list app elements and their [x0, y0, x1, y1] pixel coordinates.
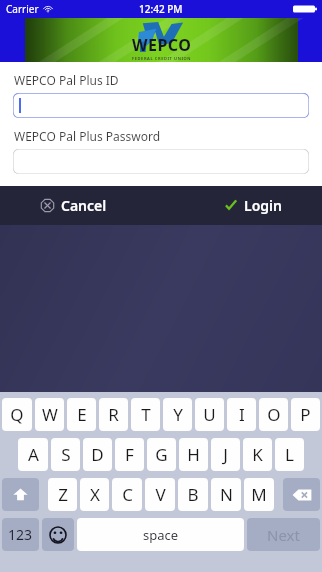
- staticText: N: [220, 483, 233, 506]
- staticText: G: [155, 443, 168, 466]
- staticText: D: [91, 443, 104, 466]
- button[interactable]: Login: [224, 196, 282, 215]
- button[interactable]: [13, 149, 309, 174]
- staticText: WEPCO Pal Plus ID: [14, 72, 119, 88]
- button[interactable]: V: [145, 478, 175, 511]
- button[interactable]: Shift: [2, 478, 39, 511]
- button[interactable]: W: [35, 398, 64, 431]
- button[interactable]: R: [99, 398, 128, 431]
- staticText: H: [187, 443, 200, 466]
- button[interactable]: H: [179, 438, 208, 471]
- staticText: 12:42 PM: [139, 2, 183, 16]
- staticText: WEPCO Pal Plus Password: [14, 128, 161, 144]
- staticText: Q: [10, 403, 24, 426]
- staticText: O: [267, 403, 281, 426]
- button[interactable]: F: [115, 438, 144, 471]
- button[interactable]: D: [83, 438, 112, 471]
- staticText: C: [122, 483, 133, 506]
- button[interactable]: K: [243, 438, 272, 471]
- staticText: T: [141, 403, 151, 426]
- button[interactable]: B: [178, 478, 208, 511]
- staticText: space: [143, 526, 179, 544]
- staticText: Y: [173, 403, 183, 426]
- staticText: B: [187, 483, 199, 506]
- button[interactable]: I: [227, 398, 256, 431]
- button[interactable]: A: [18, 438, 48, 471]
- button[interactable]: L: [275, 438, 304, 471]
- button[interactable]: Z: [48, 478, 77, 511]
- button[interactable]: C: [112, 478, 142, 511]
- staticText: 123: [8, 525, 33, 544]
- staticText: S: [61, 443, 71, 466]
- button[interactable]: M: [244, 478, 274, 511]
- button[interactable]: N: [211, 478, 241, 511]
- staticText: E: [77, 403, 87, 426]
- button[interactable]: J: [211, 438, 240, 471]
- staticText: Cancel: [61, 196, 107, 215]
- staticText: W: [42, 403, 58, 426]
- button[interactable]: P: [291, 398, 320, 431]
- staticText: X: [90, 483, 100, 506]
- button[interactable]: S: [51, 438, 80, 471]
- button[interactable]: U: [195, 398, 224, 431]
- button[interactable]: space: [77, 518, 244, 551]
- button[interactable]: G: [147, 438, 176, 471]
- staticText: Login: [244, 196, 282, 215]
- button[interactable]: T: [131, 398, 160, 431]
- staticText: U: [203, 403, 216, 426]
- button[interactable]: Emoji keyboard: [42, 518, 74, 551]
- button[interactable]: X: [80, 478, 109, 511]
- staticText: R: [108, 403, 119, 426]
- staticText: Z: [58, 483, 68, 506]
- button[interactable]: E: [67, 398, 96, 431]
- button[interactable]: Next: [247, 518, 320, 551]
- button[interactable]: Y: [163, 398, 192, 431]
- staticText: K: [252, 443, 263, 466]
- staticText: P: [300, 403, 311, 426]
- staticText: L: [285, 443, 294, 466]
- button[interactable]: [13, 93, 309, 118]
- staticText: J: [223, 443, 228, 466]
- staticText: Carrier: [6, 2, 39, 16]
- staticText: FEDERAL CREDIT UNION: [132, 56, 192, 61]
- staticText: V: [155, 483, 166, 506]
- button[interactable]: Cancel: [40, 196, 107, 215]
- staticText: Next: [267, 525, 300, 545]
- button[interactable]: 123: [2, 518, 39, 551]
- button[interactable]: Q: [2, 398, 32, 431]
- staticText: F: [125, 443, 134, 466]
- staticText: M: [251, 483, 267, 506]
- button[interactable]: Backspace: [283, 478, 320, 511]
- button[interactable]: O: [259, 398, 288, 431]
- staticText: A: [28, 443, 39, 466]
- staticText: WEPCO: [132, 34, 192, 56]
- staticText: I: [239, 403, 245, 426]
